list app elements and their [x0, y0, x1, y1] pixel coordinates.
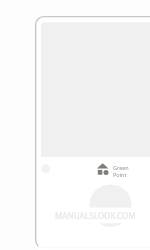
other: Green Point — [96, 161, 109, 174]
staticText: Point — [113, 171, 127, 178]
staticText: MANUALSLOOK.COM — [55, 210, 136, 221]
button[interactable]: Green Point — [96, 161, 129, 175]
staticText: Green — [113, 164, 129, 171]
